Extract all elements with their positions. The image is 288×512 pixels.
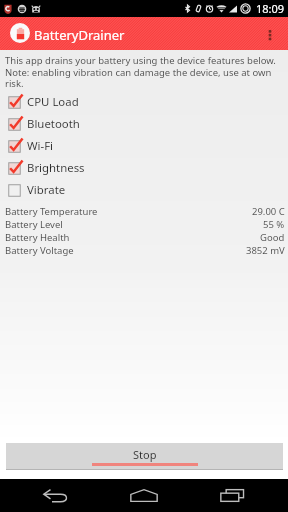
- staticText: Brightness: [27, 160, 85, 176]
- staticText: Stop: [133, 447, 157, 462]
- button[interactable]: Bluetooth: [0, 113, 288, 135]
- staticText: CPU Load: [27, 94, 79, 110]
- staticText: BatteryDrainer: [34, 26, 125, 44]
- staticText: Battery Voltage: [5, 244, 74, 257]
- staticText: 55 %: [263, 218, 285, 231]
- staticText: 3852 mV: [246, 244, 285, 257]
- staticText: Vibrate: [27, 182, 66, 198]
- button[interactable]: Recents: [220, 489, 248, 502]
- staticText: This app drains your battery using the d…: [5, 54, 284, 90]
- button[interactable]: Home: [130, 489, 158, 502]
- button[interactable]: More options: [258, 17, 288, 50]
- button[interactable]: CPU Load: [0, 91, 288, 113]
- staticText: 18:09: [256, 1, 285, 16]
- button[interactable]: Stop: [6, 443, 283, 470]
- staticText: 29.00 C: [252, 205, 285, 218]
- button[interactable]: Brightness: [0, 157, 288, 179]
- button[interactable]: Vibrate: [0, 179, 288, 201]
- staticText: Battery Health: [5, 231, 70, 244]
- staticText: Wi-Fi: [27, 138, 54, 154]
- staticText: Good: [260, 231, 285, 244]
- staticText: Bluetooth: [27, 116, 80, 132]
- button[interactable]: Wi-Fi: [0, 135, 288, 157]
- staticText: Battery Temperature: [5, 205, 98, 218]
- staticText: Battery Level: [5, 218, 63, 231]
- button[interactable]: Back: [43, 489, 68, 502]
